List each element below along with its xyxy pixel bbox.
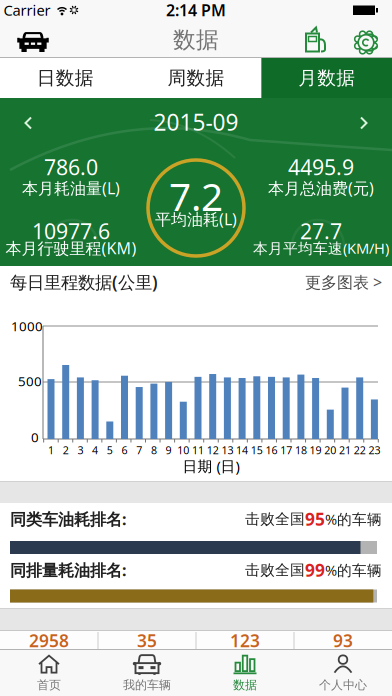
button[interactable]: Next month bbox=[349, 108, 379, 138]
staticText: 2:14 PM bbox=[166, 0, 226, 21]
staticText: 21 bbox=[339, 443, 351, 457]
staticText: 10977.6 bbox=[32, 217, 110, 245]
staticText: 平均油耗(L) bbox=[155, 208, 237, 230]
staticText: 1000 bbox=[11, 317, 43, 335]
staticText: 首页 bbox=[37, 678, 61, 692]
staticText: 2015-09 bbox=[153, 107, 238, 137]
staticText: 6 bbox=[121, 443, 127, 457]
button[interactable]: 日数据 bbox=[0, 58, 131, 98]
staticText: 同类车油耗排名: bbox=[10, 508, 126, 530]
staticText: 2 bbox=[63, 443, 69, 457]
staticText: 数据 bbox=[173, 26, 219, 54]
staticText: Carrier bbox=[3, 0, 50, 20]
staticText: 16 bbox=[265, 443, 277, 457]
staticText: 个人中心 bbox=[319, 678, 367, 692]
button[interactable]: 更多图表 > bbox=[305, 271, 382, 293]
staticText: 17 bbox=[280, 443, 292, 457]
staticText: 22 bbox=[354, 443, 366, 457]
staticText: 7 bbox=[136, 443, 142, 457]
staticText: 786.0 bbox=[44, 153, 98, 181]
staticText: 7.2 bbox=[169, 170, 223, 222]
staticText: 11 bbox=[192, 443, 204, 457]
staticText: 9 bbox=[166, 443, 172, 457]
button[interactable]: 周数据 bbox=[131, 58, 261, 98]
staticText: 2958 bbox=[29, 629, 69, 652]
staticText: 同排量耗油排名: bbox=[10, 559, 126, 581]
staticText: 本月行驶里程(KM) bbox=[5, 237, 136, 259]
staticText: 20 bbox=[324, 443, 336, 457]
staticText: 我的车辆 bbox=[123, 678, 171, 692]
staticText: 14 bbox=[236, 443, 248, 457]
staticText: 更多图表 > bbox=[305, 271, 382, 293]
staticText: 日期 (日) bbox=[182, 456, 239, 476]
button[interactable]: 首页 bbox=[0, 649, 98, 696]
button[interactable]: 月数据 bbox=[261, 58, 392, 98]
staticText: 击败全国 bbox=[245, 510, 305, 528]
staticText: 数据 bbox=[233, 678, 257, 692]
button[interactable]: 数据 bbox=[196, 649, 294, 696]
staticText: 99 bbox=[305, 558, 325, 581]
staticText: 500 bbox=[18, 372, 42, 390]
staticText: 8 bbox=[151, 443, 157, 457]
staticText: 15 bbox=[251, 443, 263, 457]
staticText: %的车辆 bbox=[325, 560, 382, 580]
staticText: 1 bbox=[48, 443, 54, 457]
staticText: 月数据 bbox=[298, 66, 355, 89]
staticText: 本月总油费(元) bbox=[268, 177, 374, 199]
button[interactable]: Settings bbox=[346, 23, 386, 60]
staticText: 4495.9 bbox=[288, 153, 354, 181]
staticText: 93 bbox=[333, 629, 353, 652]
staticText: 123 bbox=[230, 629, 260, 652]
button[interactable]: My car bbox=[11, 22, 55, 59]
staticText: 击败全国 bbox=[245, 561, 305, 579]
staticText: 每日里程数据(公里) bbox=[10, 270, 158, 293]
staticText: 19 bbox=[310, 443, 322, 457]
staticText: 95 bbox=[305, 507, 325, 530]
staticText: 27.7 bbox=[300, 217, 342, 245]
staticText: 35 bbox=[137, 629, 157, 652]
staticText: 周数据 bbox=[167, 66, 224, 89]
staticText: 3 bbox=[77, 443, 83, 457]
staticText: 10 bbox=[177, 443, 189, 457]
staticText: 日数据 bbox=[37, 66, 94, 89]
staticText: 0 bbox=[31, 428, 39, 446]
staticText: %的车辆 bbox=[325, 509, 382, 529]
staticText: 23 bbox=[368, 443, 380, 457]
staticText: 12 bbox=[207, 443, 219, 457]
staticText: 本月平均车速(KM/H) bbox=[253, 238, 389, 258]
button[interactable]: Previous month bbox=[13, 108, 43, 138]
button[interactable]: 个人中心 bbox=[294, 649, 392, 696]
button[interactable]: Fuel savings bbox=[295, 23, 335, 60]
button[interactable]: 我的车辆 bbox=[98, 649, 196, 696]
staticText: 18 bbox=[295, 443, 307, 457]
staticText: 本月耗油量(L) bbox=[22, 177, 120, 199]
staticText: 4 bbox=[92, 443, 98, 457]
staticText: 13 bbox=[221, 443, 233, 457]
staticText: 5 bbox=[107, 443, 113, 457]
